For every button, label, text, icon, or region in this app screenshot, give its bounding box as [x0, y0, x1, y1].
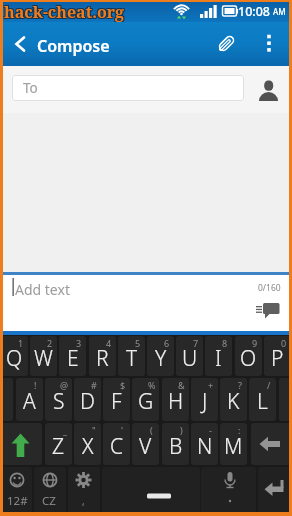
staticText: AM — [273, 6, 286, 17]
button[interactable] — [68, 467, 100, 516]
staticText: 2 — [47, 337, 53, 349]
button[interactable]: $ — [103, 378, 130, 421]
staticText: N — [197, 432, 213, 461]
button[interactable]: 8 — [205, 336, 232, 376]
button[interactable]: " — [74, 423, 101, 465]
staticText: X — [82, 432, 94, 461]
staticText: ! — [34, 379, 37, 391]
staticText: 6 — [164, 337, 170, 349]
button[interactable] — [251, 423, 291, 465]
staticText: M — [224, 432, 243, 461]
staticText: 4 — [106, 337, 112, 349]
staticText: % — [148, 379, 156, 391]
staticText: 0/160 — [258, 282, 281, 294]
staticText: 9 — [252, 337, 258, 349]
button[interactable]: # — [74, 378, 101, 421]
staticText: B — [169, 432, 183, 461]
staticText: F — [111, 387, 122, 416]
button[interactable] — [1, 423, 42, 465]
button[interactable] — [1, 467, 32, 516]
button[interactable]: 0 — [264, 336, 291, 376]
staticText: 10:08 — [238, 3, 271, 20]
staticText: @ — [60, 379, 69, 391]
button[interactable] — [212, 30, 240, 58]
staticText: hack-cheat.org — [4, 1, 125, 23]
button[interactable]: @ — [45, 378, 72, 421]
button[interactable]: ? — [220, 378, 247, 421]
staticText: 3 — [76, 337, 82, 349]
button[interactable] — [252, 298, 284, 324]
button[interactable]: ' — [103, 423, 130, 465]
button[interactable]: 3 — [59, 336, 86, 376]
staticText: , — [82, 494, 85, 508]
button[interactable]: + — [191, 378, 218, 421]
staticText: $ — [120, 379, 126, 391]
button[interactable]: : — [220, 423, 247, 465]
button[interactable]: To — [12, 75, 244, 101]
staticText: 1 — [18, 337, 24, 349]
staticText: Z — [52, 432, 65, 461]
staticText: S — [53, 387, 65, 416]
staticText: 5 — [135, 337, 141, 349]
staticText: U — [182, 344, 198, 373]
staticText: I — [215, 344, 222, 373]
staticText: hack-cheat.org — [5, 0, 126, 22]
staticText: : — [238, 424, 241, 436]
button[interactable] — [0, 378, 13, 421]
staticText: ) — [180, 424, 183, 436]
staticText: Y — [155, 344, 167, 373]
button[interactable]: 5 — [118, 336, 145, 376]
button[interactable]: 1 — [1, 336, 28, 376]
button[interactable] — [4, 30, 34, 58]
staticText: To — [23, 79, 38, 97]
staticText: _ — [63, 424, 67, 436]
staticText: T — [126, 344, 138, 373]
button[interactable]: 4 — [89, 336, 116, 376]
button[interactable]: 9 — [235, 336, 262, 376]
button[interactable]: 6 — [147, 336, 174, 376]
staticText: P — [271, 344, 284, 373]
button[interactable]: ! — [16, 378, 43, 421]
button[interactable]: 2 — [30, 336, 57, 376]
staticText: # — [91, 379, 97, 391]
staticText: hack-cheat.org — [4, 2, 125, 24]
button[interactable]: _ — [45, 423, 72, 465]
button[interactable]: % — [132, 378, 159, 421]
staticText: 12# — [7, 493, 28, 509]
staticText: 7 — [193, 337, 199, 349]
staticText: W — [34, 344, 53, 373]
button[interactable] — [102, 467, 200, 516]
staticText: hack-cheat.org — [3, 2, 124, 24]
staticText: Add text — [15, 280, 70, 299]
staticText: E — [67, 344, 79, 373]
staticText: Compose — [37, 35, 110, 57]
staticText: hack-cheat.org — [5, 1, 126, 23]
button[interactable]: 7 — [176, 336, 203, 376]
button[interactable] — [258, 467, 291, 516]
button[interactable]: ( — [132, 423, 159, 465]
staticText: O — [240, 344, 257, 373]
staticText: ' — [121, 424, 124, 436]
button[interactable]: & — [162, 378, 189, 421]
button[interactable]: / — [249, 378, 276, 421]
button[interactable] — [279, 378, 292, 421]
staticText: ? — [238, 379, 242, 391]
button[interactable] — [201, 467, 256, 516]
staticText: & — [178, 379, 185, 391]
button[interactable]: - — [191, 423, 218, 465]
staticText: L — [257, 387, 268, 416]
button[interactable] — [34, 467, 66, 516]
staticText: Q — [6, 344, 23, 373]
staticText: CZ — [42, 493, 56, 509]
button[interactable] — [256, 30, 282, 58]
staticText: 0 — [281, 337, 287, 349]
staticText: R — [96, 344, 109, 373]
staticText: hack-cheat.org — [5, 2, 126, 24]
staticText: K — [227, 387, 240, 416]
button[interactable] — [0, 275, 292, 331]
button[interactable]: ) — [162, 423, 189, 465]
button[interactable] — [252, 74, 284, 104]
staticText: ( — [150, 424, 153, 436]
staticText: H — [168, 387, 184, 416]
staticText: G — [138, 387, 154, 416]
